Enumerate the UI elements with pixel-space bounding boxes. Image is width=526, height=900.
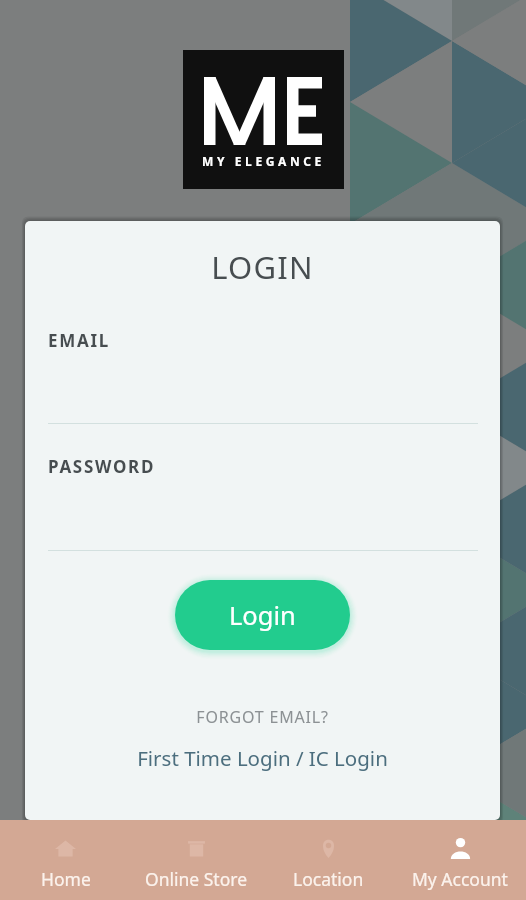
staticText: Online Store (145, 867, 248, 891)
button[interactable]: Location (262, 820, 394, 900)
staticText: MY ELEGANCE (202, 153, 325, 169)
button[interactable]: FORGOT EMAIL? (25, 706, 500, 728)
staticText: Location (293, 867, 364, 891)
staticText: Login (229, 598, 296, 633)
other: Home (55, 838, 76, 859)
other: Location (318, 838, 339, 859)
other: My Account (450, 838, 471, 859)
button[interactable]: Home (0, 820, 131, 900)
button[interactable]: Online Store (131, 820, 262, 900)
staticText: EMAIL (48, 329, 110, 352)
button[interactable]: First Time Login / IC Login (25, 744, 500, 772)
button[interactable]: Login (175, 580, 350, 650)
staticText: PASSWORD (48, 455, 156, 478)
button[interactable]: My Account (394, 820, 526, 900)
staticText: Home (41, 867, 91, 891)
staticText: My Account (412, 867, 508, 891)
other: Online Store (186, 838, 207, 859)
staticText: LOGIN (25, 246, 500, 288)
